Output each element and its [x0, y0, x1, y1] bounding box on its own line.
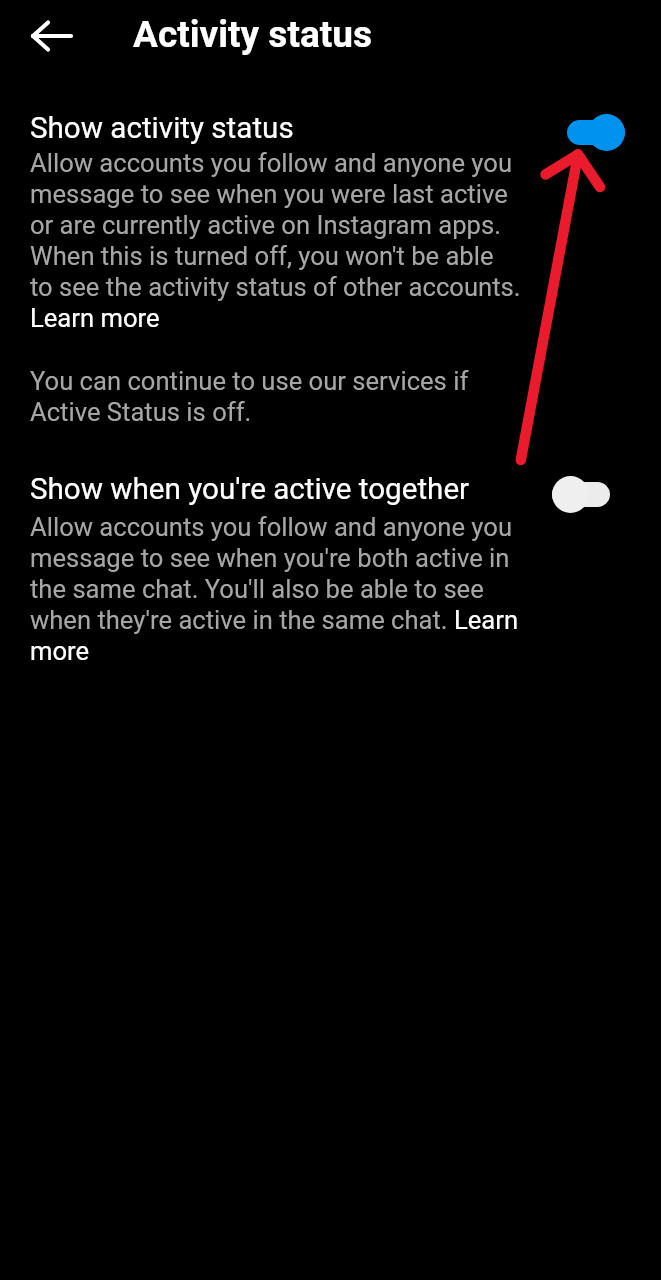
button[interactable]: Show activity status: [30, 111, 521, 146]
button[interactable]: Show when you're active together off: [552, 476, 610, 513]
staticText: You can continue to use our services if …: [30, 366, 521, 428]
staticText: Activity status: [133, 13, 373, 56]
staticText: Allow accounts you follow and anyone you…: [30, 148, 521, 334]
staticText: Allow accounts you follow and anyone you…: [30, 512, 521, 667]
button[interactable]: Back: [12, 11, 64, 63]
button[interactable]: Show activity status on: [567, 114, 625, 151]
button[interactable]: Show when you're active together: [30, 472, 521, 507]
